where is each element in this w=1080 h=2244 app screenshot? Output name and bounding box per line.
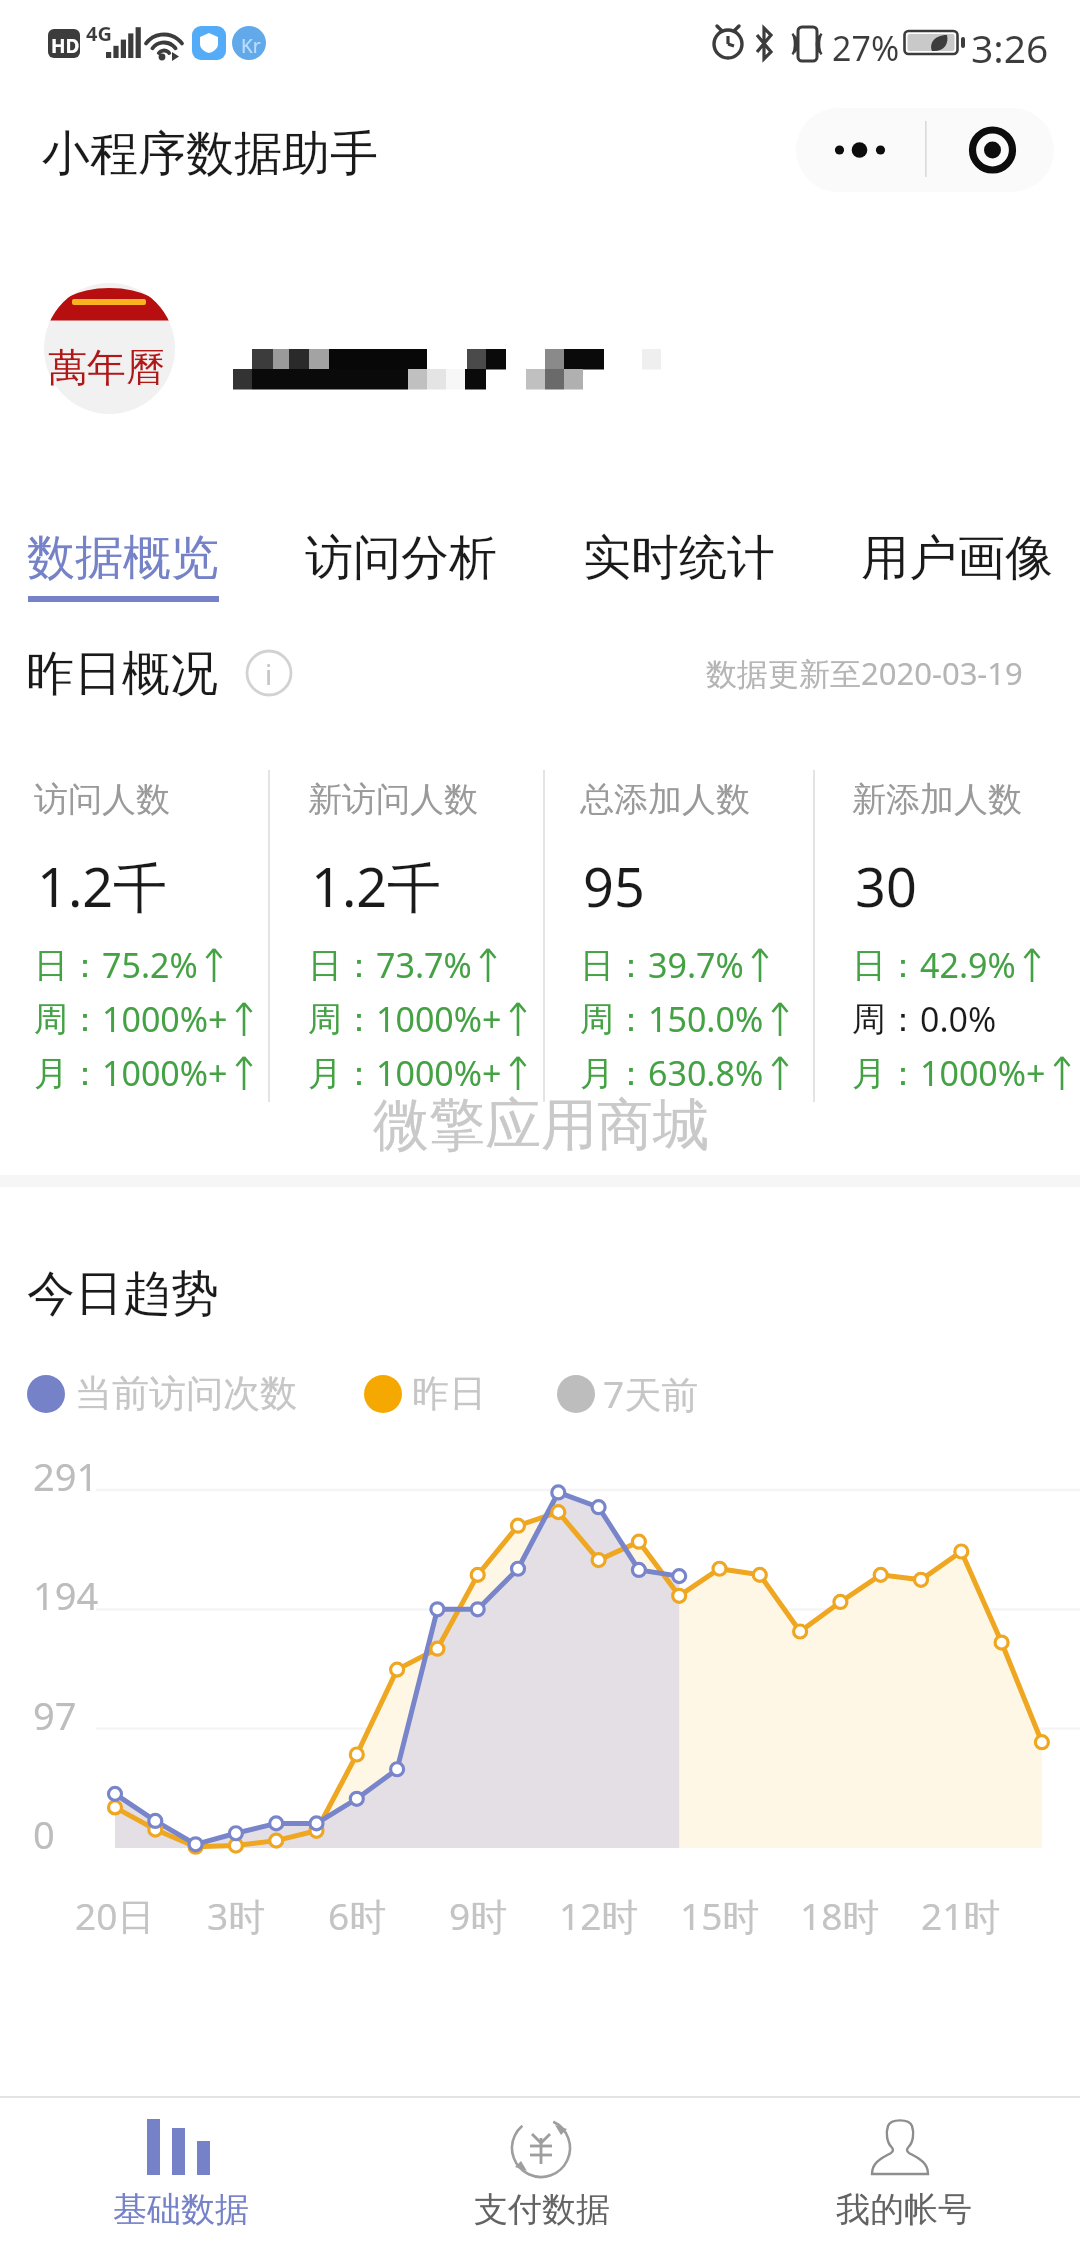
staticText: 1000%+ — [376, 1050, 502, 1096]
staticText: 1.2千 — [311, 849, 442, 923]
staticText: 7天前 — [603, 1368, 699, 1419]
staticText: 42.9% — [920, 942, 1016, 988]
staticText: 18时 — [800, 1890, 880, 1941]
staticText: 0.0% — [920, 996, 997, 1042]
button[interactable]: 用户画像 — [822, 504, 1080, 610]
staticText: 3:26 — [971, 21, 1049, 74]
staticText: HD — [51, 33, 80, 59]
staticText: 12时 — [559, 1890, 639, 1941]
staticText: 27% — [832, 25, 900, 71]
staticText: 昨日概况 — [26, 644, 218, 704]
staticText: 月： — [580, 1052, 648, 1095]
staticText: 95 — [583, 849, 645, 923]
staticText: 291 — [33, 1450, 99, 1502]
button[interactable]: 基础数据 — [0, 2100, 360, 2244]
staticText: 97 — [33, 1689, 77, 1741]
staticText: 我的帐号 — [836, 2188, 972, 2231]
button[interactable]: 我的帐号 — [720, 2100, 1080, 2244]
staticText: 30 — [855, 849, 917, 923]
staticText: 1.2千 — [37, 849, 168, 923]
staticText: 基础数据 — [113, 2188, 249, 2231]
button[interactable]: 支付数据 — [360, 2100, 720, 2244]
staticText: 20日 — [75, 1890, 155, 1941]
staticText: 1000%+ — [920, 1050, 1046, 1096]
staticText: 数据更新至2020-03-19 — [706, 652, 1023, 694]
staticText: 数据概览 — [27, 528, 219, 588]
button[interactable]: Close mini program — [925, 108, 1054, 192]
staticText: 75.2% — [102, 942, 198, 988]
staticText: 73.7% — [376, 942, 472, 988]
staticText: 150.0% — [648, 996, 764, 1042]
staticText: 用户画像 — [861, 528, 1053, 588]
staticText: 日： — [308, 944, 376, 987]
staticText: i — [265, 655, 273, 693]
staticText: 新添加人数 — [852, 778, 1022, 821]
staticText: 9时 — [449, 1890, 508, 1941]
staticText: 1000%+ — [376, 996, 502, 1042]
staticText: 630.8% — [648, 1050, 764, 1096]
button[interactable]: More options — [796, 108, 925, 192]
staticText: 萬年曆 — [48, 343, 165, 392]
staticText: 周： — [852, 998, 920, 1041]
staticText: 周： — [308, 998, 376, 1041]
staticText: 新访问人数 — [308, 778, 478, 821]
staticText: 月： — [852, 1052, 920, 1095]
staticText: 1000%+ — [102, 996, 228, 1042]
staticText: 21时 — [921, 1890, 1001, 1941]
staticText: 当前访问次数 — [75, 1370, 297, 1417]
staticText: 支付数据 — [474, 2188, 610, 2231]
staticText: 6时 — [328, 1890, 387, 1941]
staticText: 日： — [852, 944, 920, 987]
staticText: 月： — [308, 1052, 376, 1095]
button[interactable]: Info — [246, 650, 292, 696]
staticText: 周： — [580, 998, 648, 1041]
staticText: 访问人数 — [34, 778, 170, 821]
staticText: 日： — [580, 944, 648, 987]
staticText: 月： — [34, 1052, 102, 1095]
staticText: 194 — [33, 1569, 99, 1621]
staticText: 昨日 — [412, 1370, 486, 1417]
staticText: 3时 — [207, 1890, 266, 1941]
staticText: 日： — [34, 944, 102, 987]
staticText: 1000%+ — [102, 1050, 228, 1096]
staticText: 39.7% — [648, 942, 744, 988]
staticText: 4G — [86, 20, 112, 47]
staticText: 总添加人数 — [580, 778, 750, 821]
staticText: 微擎应用商城 — [373, 1090, 709, 1161]
staticText: 小程序数据助手 — [42, 124, 378, 184]
staticText: 周： — [34, 998, 102, 1041]
staticText: 今日趋势 — [27, 1264, 219, 1324]
button[interactable]: 数据概览 — [0, 504, 258, 610]
staticText: 访问分析 — [305, 528, 497, 588]
staticText: Kr — [241, 33, 261, 59]
staticText: 0 — [33, 1808, 55, 1860]
button[interactable]: 实时统计 — [544, 504, 814, 610]
staticText: 实时统计 — [583, 528, 775, 588]
button[interactable]: 访问分析 — [266, 504, 536, 610]
staticText: 15时 — [680, 1890, 760, 1941]
